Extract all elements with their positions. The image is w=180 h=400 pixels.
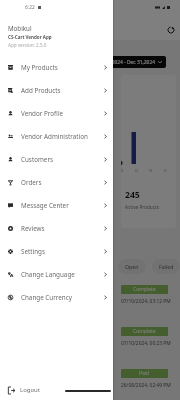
button[interactable]: Message Center [0,194,113,217]
button[interactable]: Settings [0,240,113,263]
button[interactable]: Customers [0,148,113,171]
staticText: Paid [139,370,150,377]
button[interactable]: My Products [0,56,113,79]
staticText: Open [125,263,139,270]
staticText: Complete [133,286,156,293]
staticText: 07/10/2024, 03:12 PM [121,298,171,305]
button[interactable]: Change Language [0,263,113,286]
staticText: S [121,168,124,174]
button[interactable]: Logout [0,380,113,400]
button[interactable]: Sep 01,2024 - Dec 31,2024 [91,56,166,68]
button[interactable]: Failed [152,259,180,274]
staticText: Customers [21,155,54,164]
staticText: My Products [21,63,58,72]
staticText: App version: 2.5.0 [8,42,47,48]
staticText: Complete [133,328,156,335]
staticText: Change Currency [21,293,72,302]
button[interactable]: Vendor Profile [0,102,113,125]
staticText: Add Products [21,86,61,95]
staticText: Logout [20,386,40,394]
button[interactable]: Refresh [167,26,175,34]
button[interactable]: Reviews [0,217,113,240]
staticText: Change Language [21,270,75,279]
staticText: Vendor Profile [21,109,64,118]
staticText: CS-Cart Vendor App [8,34,52,40]
staticText: Orders [21,178,42,187]
button[interactable]: Orders [0,171,113,194]
staticText: O [135,168,139,174]
staticText: 07/10/2024, 00:23 PM [121,340,171,347]
button[interactable]: Add Products [0,79,113,102]
staticText: 245 [125,189,140,201]
staticText: Vendor Administration [21,132,88,141]
staticText: Reviews [21,224,45,233]
staticText: Failed [159,263,173,270]
staticText: Active Products [125,204,159,210]
staticText: D [164,168,168,174]
button[interactable]: Vendor Administration [0,125,113,148]
staticText: Mobikul [8,24,32,32]
button[interactable]: Change Currency [0,286,113,309]
staticText: Message Center [21,201,69,210]
staticText: N [149,168,153,174]
staticText: Sep 01,2024 - Dec 31,2024 [95,59,155,66]
staticText: 6:22 [25,4,35,11]
staticText: Settings [21,247,45,256]
staticText: 26/08/2024, 02:49 PM [121,382,171,389]
button[interactable]: Open [118,259,146,274]
